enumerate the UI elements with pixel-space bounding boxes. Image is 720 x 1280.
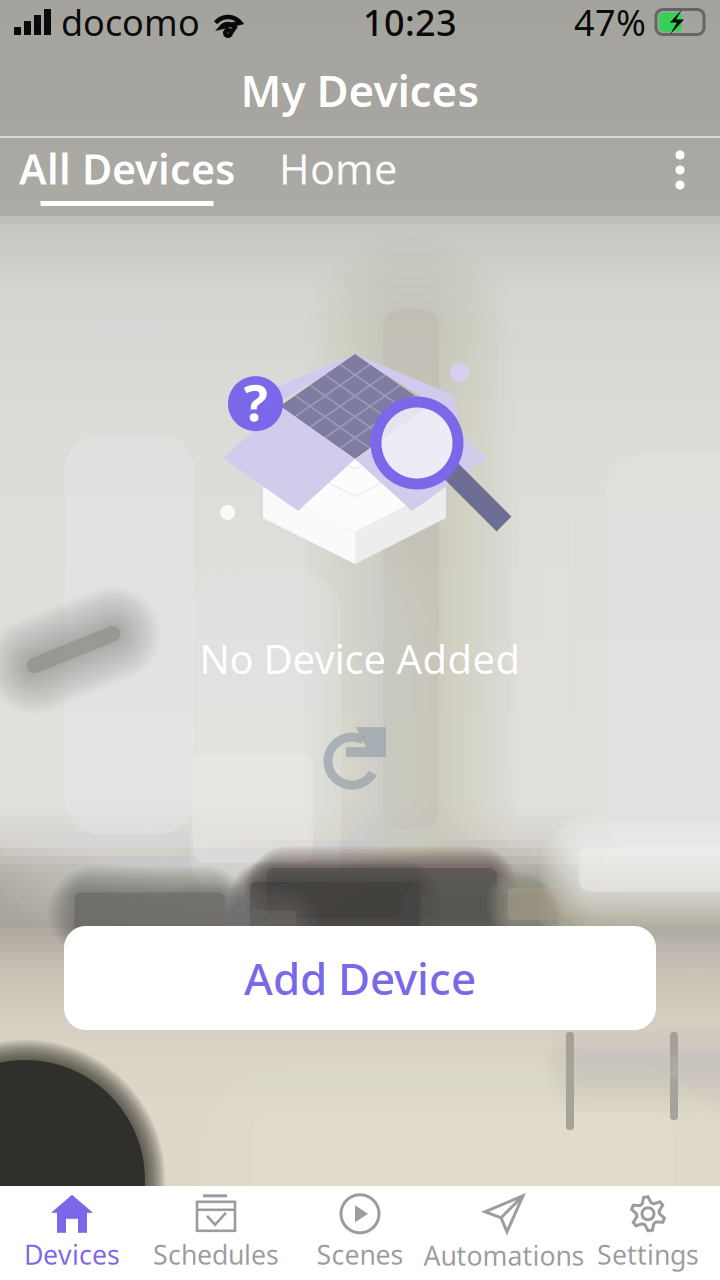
staticText: ? [243, 368, 267, 435]
button[interactable]: Scenes [288, 1186, 432, 1280]
staticText: Add Device [244, 949, 476, 1007]
button[interactable]: Add Device [64, 926, 656, 1030]
staticText: 47% [574, 0, 646, 46]
button[interactable]: Settings [576, 1186, 720, 1280]
button[interactable]: Refresh [323, 729, 397, 801]
staticText: 10:23 [363, 0, 457, 46]
button[interactable]: Devices [0, 1186, 144, 1280]
staticText: No Device Added [199, 632, 520, 685]
staticText: Automations [423, 1238, 584, 1273]
staticText: All Devices [19, 141, 235, 196]
button[interactable]: Home [235, 141, 407, 206]
staticText: Scenes [316, 1237, 403, 1272]
staticText: Schedules [153, 1237, 279, 1272]
button[interactable]: More options [654, 138, 706, 206]
staticText: Settings [597, 1237, 699, 1272]
button[interactable]: All Devices [19, 141, 235, 206]
staticText: docomo [61, 0, 200, 46]
button[interactable]: Schedules [144, 1186, 288, 1280]
staticText: My Devices [240, 61, 479, 119]
staticText: Devices [24, 1237, 120, 1272]
button[interactable]: Automations [432, 1186, 576, 1280]
staticText: Home [279, 141, 397, 196]
